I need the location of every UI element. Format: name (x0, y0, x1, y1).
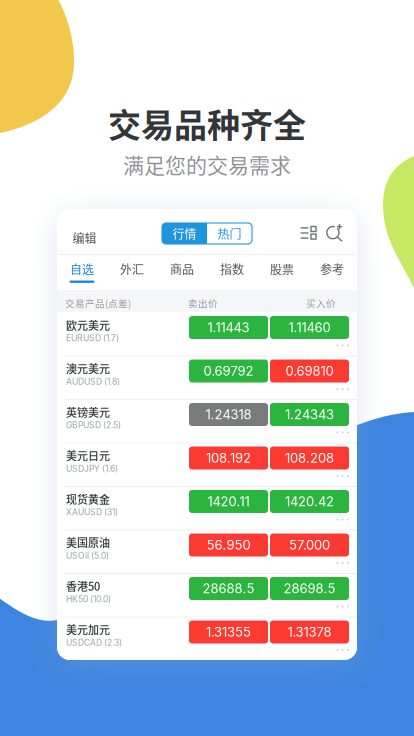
button[interactable]: 编辑 (72, 227, 112, 249)
button[interactable]: 美元加元 (57, 616, 357, 660)
button[interactable]: Search (326, 224, 343, 242)
staticText: 英镑美元 (66, 404, 110, 420)
staticText: 1.24318 (205, 407, 251, 422)
staticText: EURUSD (1.7) (66, 333, 119, 343)
staticText: 指数 (220, 260, 244, 278)
button[interactable]: 美国原油 (57, 529, 357, 573)
button[interactable]: 股票 (257, 255, 307, 291)
button[interactable]: 指数 (207, 255, 257, 291)
staticText: 外汇 (120, 260, 144, 278)
staticText: 108.208 (285, 450, 334, 466)
button[interactable]: 参考 (307, 255, 357, 291)
button[interactable]: 现货黄金 (57, 486, 357, 529)
staticText: 编辑 (72, 229, 96, 247)
staticText: XAUUSD (31) (66, 507, 118, 517)
staticText: 28698.5 (283, 581, 335, 596)
staticText: HK50 (10.0) (66, 594, 111, 604)
staticText: 108.192 (206, 450, 251, 466)
staticText: 1.11443 (207, 320, 249, 335)
staticText: 交易品种齐全 (108, 99, 306, 147)
staticText: AUDUSD (1.8) (66, 376, 120, 387)
staticText: USDJPY (1.6) (66, 463, 118, 474)
staticText: 1.11460 (288, 320, 330, 335)
staticText: 交易产品(点差) (65, 296, 131, 310)
staticText: 1.31355 (206, 624, 251, 640)
staticText: 美国原油 (66, 534, 110, 550)
button[interactable]: Layout (300, 226, 316, 239)
staticText: 1420.42 (285, 494, 334, 509)
staticText: 自选 (70, 260, 94, 278)
staticText: 满足您的交易需求 (123, 149, 291, 179)
staticText: 现货黄金 (66, 491, 110, 507)
staticText: 0.69810 (285, 363, 333, 379)
staticText: 股票 (270, 260, 294, 278)
staticText: 美元加元 (66, 621, 110, 637)
button[interactable]: 澳元美元 (57, 355, 357, 399)
staticText: 香港50 (66, 578, 100, 594)
staticText: GBPUSD (2.5) (66, 420, 121, 430)
staticText: 57.000 (289, 537, 330, 553)
staticText: 热门 (217, 225, 241, 242)
staticText: 美元日元 (66, 447, 110, 463)
staticText: 澳元美元 (66, 360, 110, 376)
button[interactable]: 热门 (207, 223, 252, 244)
button[interactable]: 英镑美元 (57, 399, 357, 442)
button[interactable]: 香港50 (57, 573, 357, 616)
button[interactable]: 外汇 (107, 255, 157, 291)
button[interactable]: 商品 (157, 255, 207, 291)
staticText: 卖出价 (188, 296, 218, 310)
staticText: 1.24343 (285, 407, 334, 422)
staticText: 欧元美元 (66, 317, 110, 333)
staticText: 1420.11 (207, 494, 249, 509)
staticText: USOil (5.0) (66, 550, 109, 561)
staticText: 商品 (170, 260, 194, 278)
staticText: 28688.5 (202, 581, 254, 596)
button[interactable]: 美元日元 (57, 442, 357, 486)
staticText: 参考 (320, 260, 344, 278)
button[interactable]: 行情 (162, 223, 207, 244)
button[interactable]: 自选 (57, 255, 107, 291)
staticText: 0.69792 (203, 363, 253, 379)
staticText: 行情 (172, 225, 196, 242)
button[interactable]: 欧元美元 (57, 312, 357, 355)
staticText: 1.31378 (287, 624, 331, 640)
staticText: USDCAD (2.3) (66, 637, 122, 648)
staticText: 56.950 (206, 537, 250, 553)
staticText: 买入价 (306, 296, 336, 310)
